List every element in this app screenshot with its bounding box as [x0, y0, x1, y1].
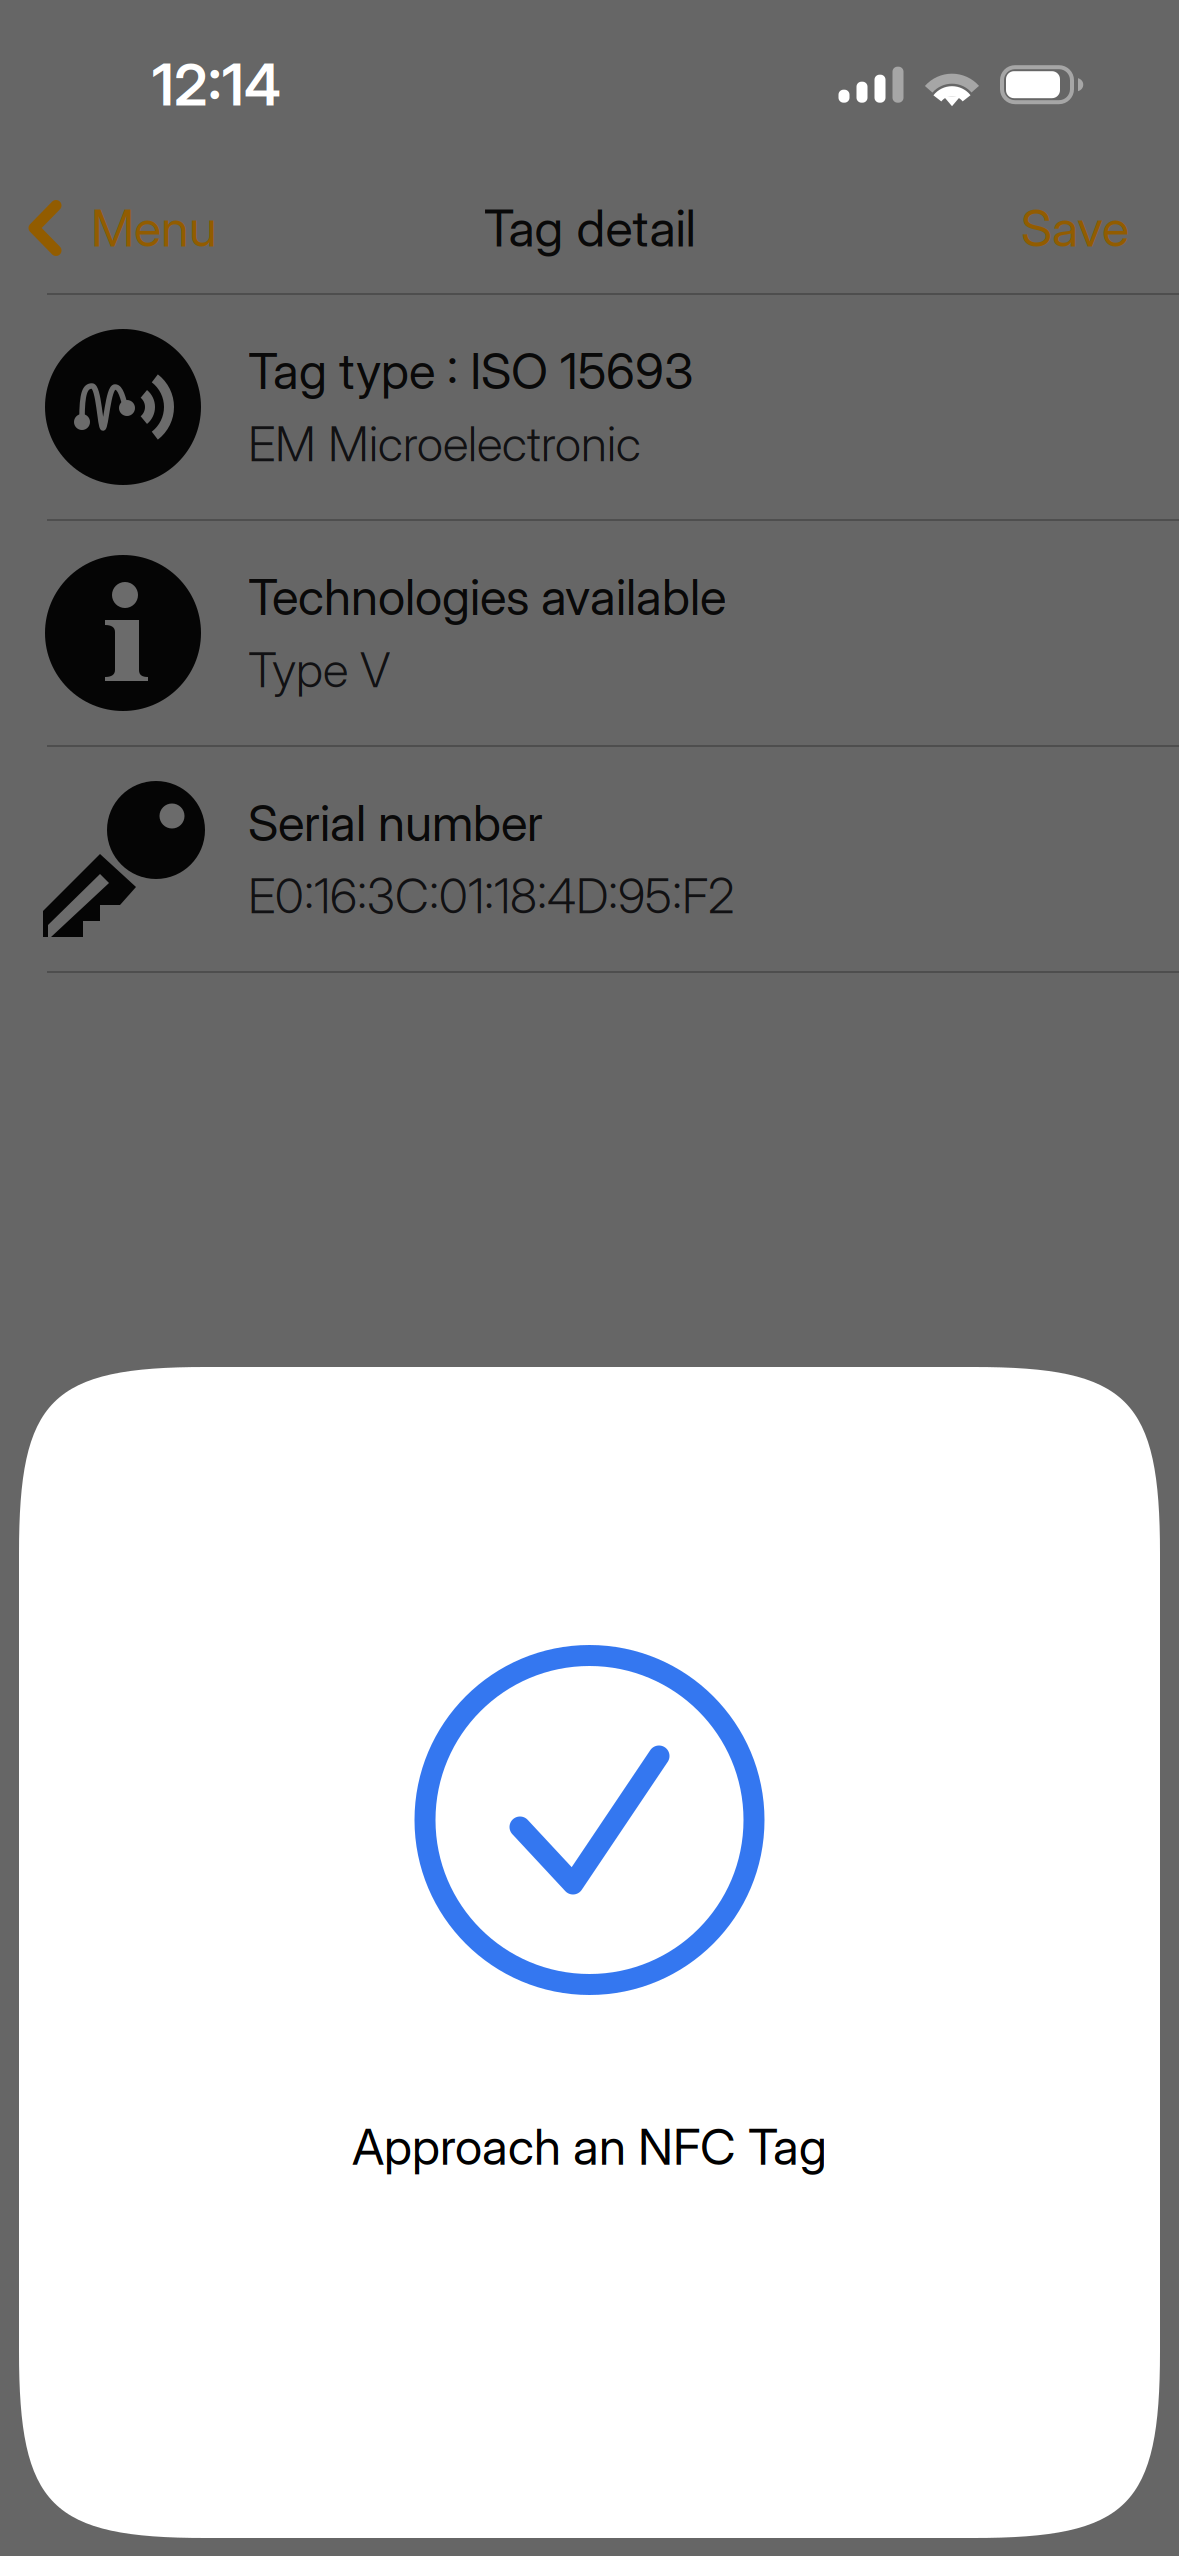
staticText: Type V [248, 641, 390, 699]
staticText: Tag detail [483, 197, 695, 259]
staticText: 12:14 [152, 50, 281, 119]
button[interactable]: Save [997, 161, 1179, 277]
staticText: E0:16:3C:01:18:4D:95:F2 [248, 867, 735, 925]
staticText: Approach an NFC Tag [352, 2117, 827, 2177]
button[interactable]: Menu [0, 161, 233, 277]
staticText: Tag type : ISO 15693 [248, 341, 694, 401]
staticText: EM Microelectronic [248, 415, 641, 473]
staticText: Save [1021, 197, 1129, 259]
staticText: Serial number [248, 793, 543, 853]
staticText: Menu [91, 197, 217, 259]
staticText: Technologies available [248, 567, 726, 627]
